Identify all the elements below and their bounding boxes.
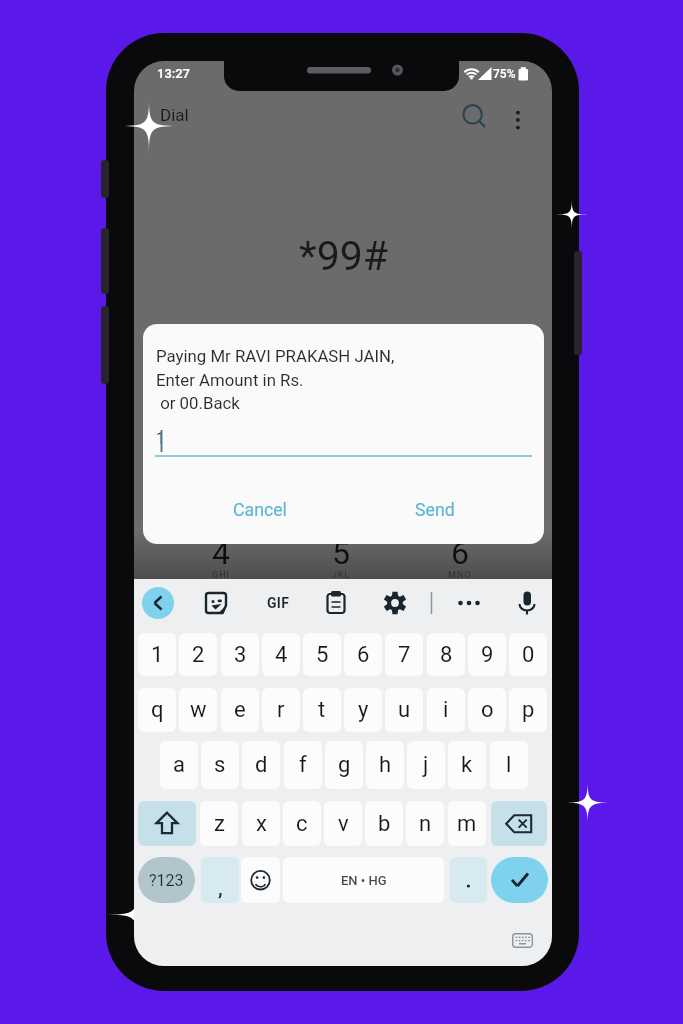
- staticText: m: [457, 811, 477, 837]
- staticText: MNO: [448, 570, 472, 581]
- button[interactable]: EN • HG: [283, 857, 444, 903]
- button[interactable]: 8: [427, 633, 465, 676]
- staticText: Dial: [160, 105, 189, 125]
- button[interactable]: 5: [303, 633, 341, 676]
- button[interactable]: Emoji: [241, 857, 280, 903]
- button[interactable]: s: [201, 741, 239, 789]
- staticText: b: [378, 811, 391, 837]
- button[interactable]: y: [344, 688, 382, 732]
- button[interactable]: z: [200, 801, 238, 846]
- button[interactable]: p: [509, 688, 547, 732]
- staticText: q: [151, 697, 164, 723]
- staticText: g: [338, 752, 351, 778]
- staticText: 9: [481, 642, 494, 668]
- staticText: GHI: [212, 570, 230, 581]
- button[interactable]: Send: [407, 494, 463, 527]
- button[interactable]: ?123: [138, 857, 195, 903]
- staticText: u: [398, 697, 411, 723]
- button[interactable]: d: [242, 741, 280, 789]
- staticText: 75%: [493, 67, 516, 81]
- button[interactable]: 0: [509, 633, 547, 676]
- staticText: Enter Amount in Rs.: [156, 370, 304, 390]
- button[interactable]: w: [179, 688, 217, 732]
- button[interactable]: Back: [142, 587, 174, 619]
- staticText: 6: [451, 534, 469, 570]
- staticText: p: [522, 697, 535, 723]
- button[interactable]: h: [366, 741, 404, 789]
- staticText: 7: [398, 642, 411, 668]
- button[interactable]: 7: [385, 633, 423, 676]
- button[interactable]: v: [324, 801, 362, 846]
- button[interactable]: c: [283, 801, 321, 846]
- button[interactable]: 2: [179, 633, 217, 676]
- button[interactable]: o: [468, 688, 506, 732]
- staticText: 3: [234, 642, 247, 668]
- staticText: z: [214, 811, 225, 837]
- button[interactable]: r: [262, 688, 300, 732]
- button[interactable]: n: [406, 801, 444, 846]
- button[interactable]: ,: [201, 857, 239, 903]
- staticText: or 00.Back: [156, 393, 240, 413]
- staticText: t: [318, 697, 326, 723]
- button[interactable]: m: [448, 801, 486, 846]
- button[interactable]: b: [365, 801, 403, 846]
- button[interactable]: j: [407, 741, 445, 789]
- staticText: a: [173, 752, 185, 778]
- button[interactable]: 3: [221, 633, 259, 676]
- staticText: y: [358, 697, 369, 723]
- button[interactable]: Clipboard: [322, 589, 350, 617]
- button[interactable]: Cancel: [225, 494, 295, 527]
- button[interactable]: More options: [498, 92, 538, 132]
- button[interactable]: x: [242, 801, 280, 846]
- staticText: 5: [316, 642, 329, 668]
- button[interactable]: k: [448, 741, 486, 789]
- button[interactable]: Hide keyboard: [512, 933, 533, 948]
- button[interactable]: Stickers: [202, 589, 230, 617]
- staticText: 2: [192, 642, 205, 668]
- button[interactable]: g: [325, 741, 363, 789]
- staticText: 5: [332, 534, 350, 570]
- button[interactable]: GIF: [260, 590, 296, 616]
- button[interactable]: [450, 857, 487, 903]
- staticText: 13:27: [157, 66, 191, 81]
- button[interactable]: More: [455, 589, 483, 617]
- staticText: x: [256, 811, 267, 837]
- staticText: 1: [151, 642, 164, 668]
- button[interactable]: t: [303, 688, 341, 732]
- staticText: Send: [415, 500, 455, 521]
- staticText: Paying Mr RAVI PRAKASH JAIN,: [156, 346, 395, 366]
- button[interactable]: 9: [468, 633, 506, 676]
- button[interactable]: Settings: [381, 589, 409, 617]
- staticText: 0: [522, 642, 535, 668]
- staticText: v: [338, 811, 349, 837]
- button[interactable]: 4: [262, 633, 300, 676]
- staticText: l: [506, 752, 512, 778]
- button[interactable]: 6: [344, 633, 382, 676]
- button[interactable]: u: [385, 688, 423, 732]
- staticText: *99#: [299, 232, 388, 280]
- button[interactable]: l: [490, 741, 528, 789]
- staticText: EN • HG: [341, 873, 387, 888]
- button[interactable]: f: [284, 741, 322, 789]
- staticText: k: [461, 752, 473, 778]
- button[interactable]: Voice input: [513, 589, 541, 617]
- button[interactable]: i: [427, 688, 465, 732]
- button[interactable]: e: [221, 688, 259, 732]
- staticText: d: [255, 752, 268, 778]
- button[interactable]: a: [160, 741, 198, 789]
- staticText: 1: [156, 428, 166, 448]
- staticText: 8: [440, 642, 453, 668]
- button[interactable]: q: [138, 688, 176, 732]
- button[interactable]: Search: [450, 92, 495, 137]
- staticText: h: [379, 752, 392, 778]
- button[interactable]: Shift: [138, 801, 196, 846]
- staticText: j: [423, 752, 429, 778]
- staticText: ?123: [149, 871, 184, 890]
- staticText: c: [296, 811, 308, 837]
- button[interactable]: 1: [138, 633, 176, 676]
- staticText: JKL: [332, 570, 351, 581]
- button[interactable]: Enter: [491, 857, 548, 903]
- staticText: n: [419, 811, 432, 837]
- staticText: w: [190, 697, 207, 723]
- button[interactable]: Backspace: [491, 801, 547, 846]
